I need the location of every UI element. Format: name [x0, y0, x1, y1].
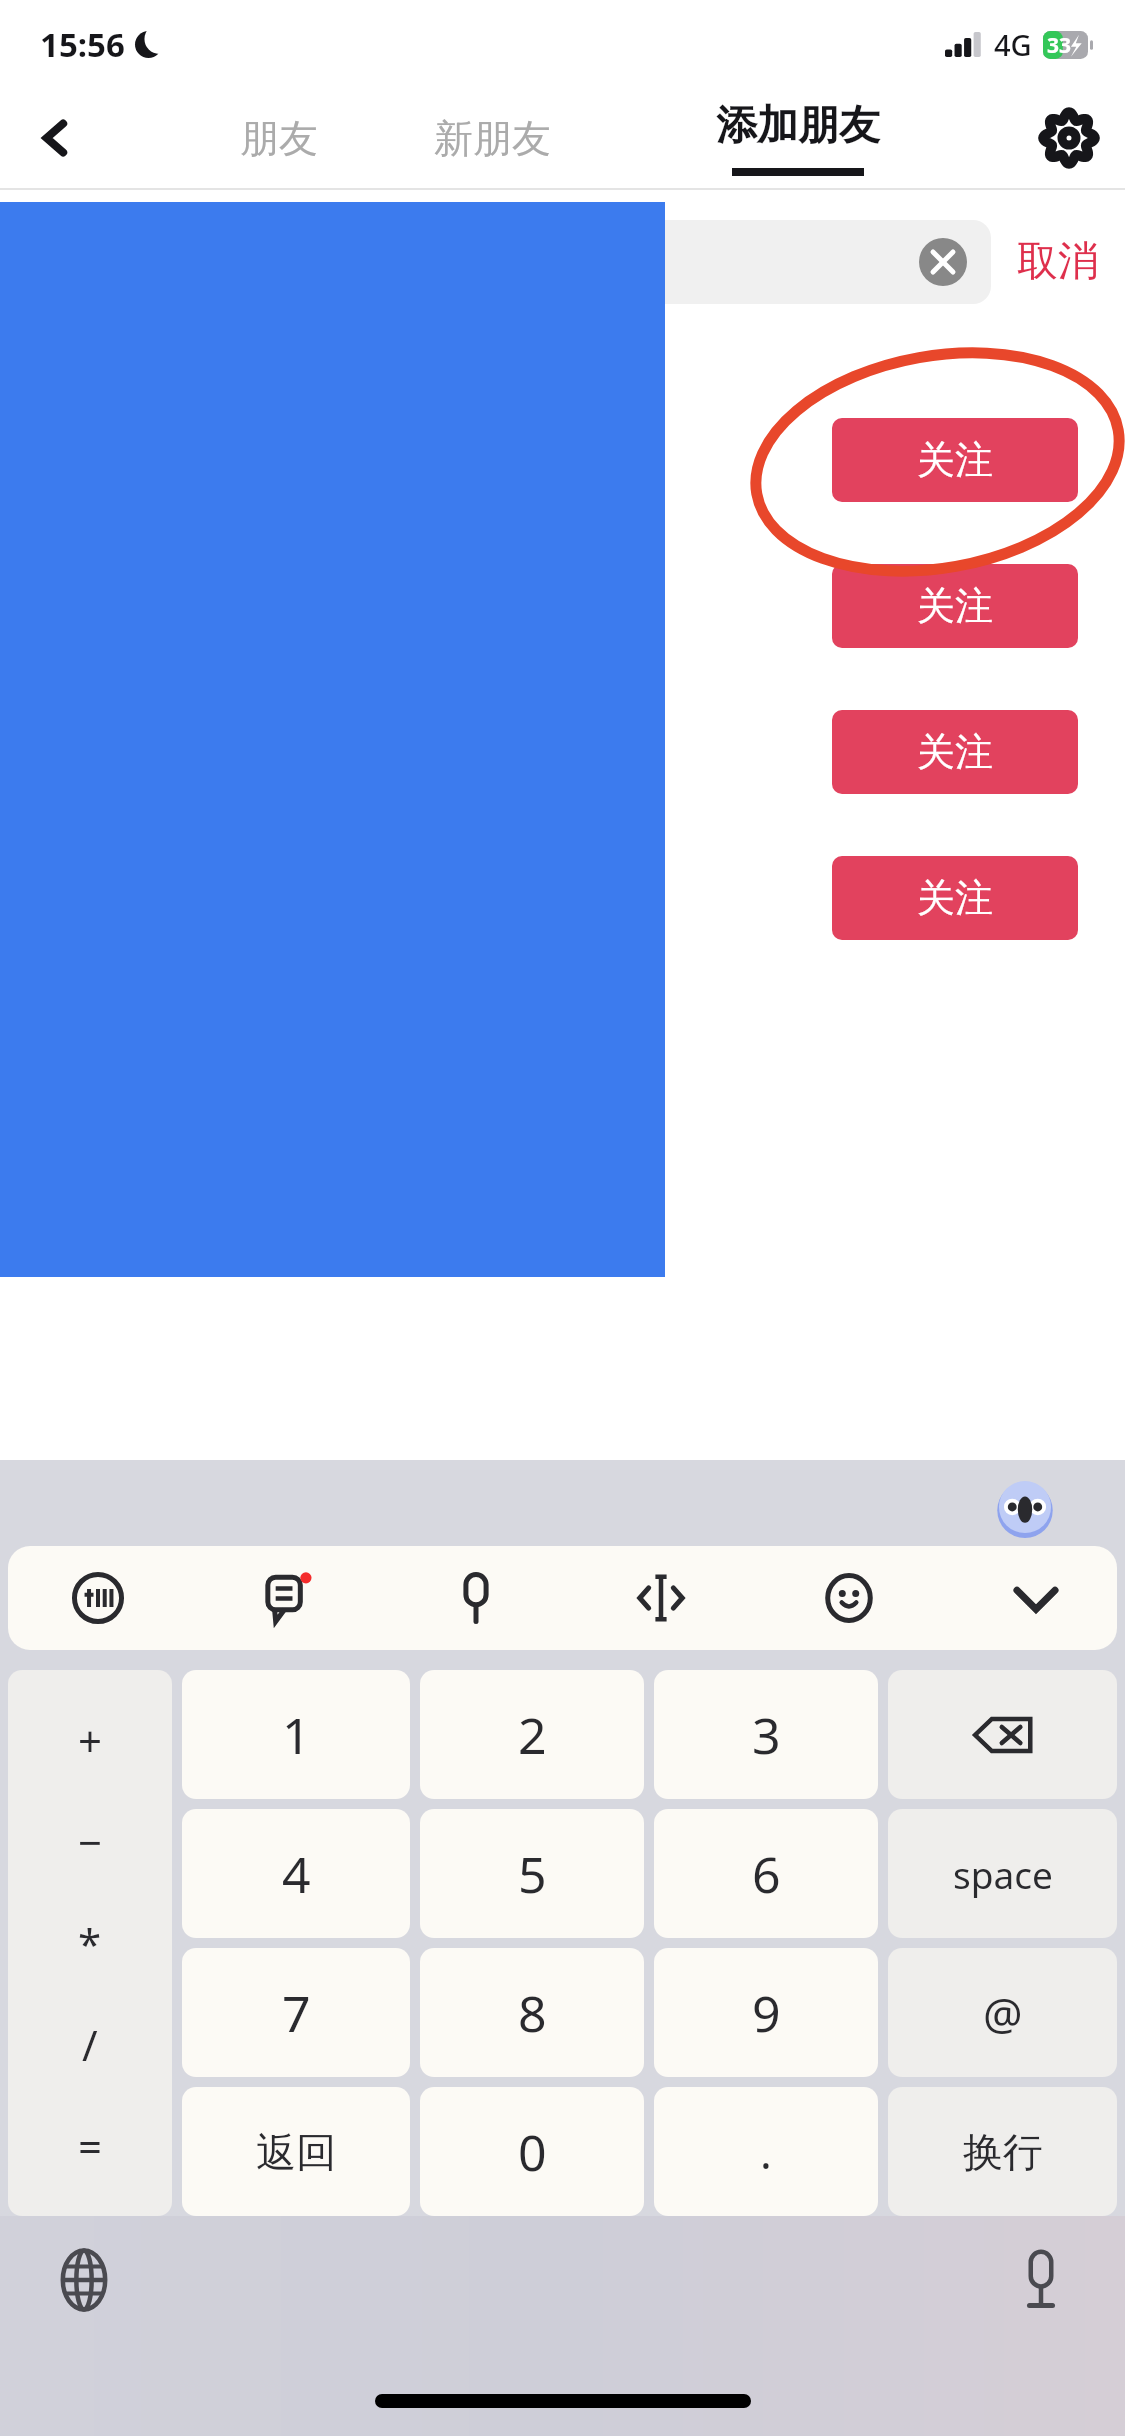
button[interactable]: 7: [182, 1948, 410, 2077]
button[interactable]: Clear text: [919, 238, 967, 286]
staticText: 2: [518, 1701, 547, 1769]
staticText: 4: [282, 1840, 311, 1908]
button[interactable]: 2: [420, 1670, 644, 1799]
staticText: 4G: [994, 25, 1032, 64]
staticText: 换行: [963, 2127, 1043, 2177]
staticText: 关注: [917, 874, 993, 922]
button[interactable]: Input method: [46, 1546, 150, 1650]
button[interactable]: 8: [420, 1948, 644, 2077]
button[interactable]: 朋友: [228, 98, 330, 179]
staticText: 添加朋友: [716, 100, 880, 152]
staticText: =: [78, 2117, 103, 2174]
staticText: *: [78, 1915, 102, 1972]
staticText: 1: [282, 1701, 311, 1769]
button[interactable]: +: [8, 1670, 172, 2216]
staticText: 朋友: [240, 114, 318, 163]
button[interactable]: Hide keyboard: [984, 1546, 1088, 1650]
button[interactable]: 关注: [832, 710, 1078, 794]
button[interactable]: Back: [0, 88, 112, 188]
button[interactable]: 6: [654, 1809, 878, 1938]
button[interactable]: 3: [654, 1670, 878, 1799]
staticText: 3: [752, 1701, 781, 1769]
button[interactable]: 0: [420, 2087, 644, 2216]
button[interactable]: 关注: [832, 418, 1078, 502]
button[interactable]: 换行: [888, 2087, 1117, 2216]
button[interactable]: 5: [420, 1809, 644, 1938]
staticText: 15:56: [40, 22, 125, 67]
button[interactable]: 返回: [182, 2087, 410, 2216]
staticText: .: [760, 2122, 772, 2182]
staticText: 33: [1047, 31, 1072, 59]
button[interactable]: 添加朋友: [716, 88, 880, 188]
staticText: 关注: [917, 728, 993, 776]
staticText: 9: [752, 1979, 781, 2047]
button[interactable]: Switch keyboard: [28, 2224, 140, 2336]
button[interactable]: 关注: [832, 856, 1078, 940]
staticText: 8: [518, 1979, 547, 2047]
button[interactable]: Messages: [236, 1546, 340, 1650]
staticText: @: [983, 1983, 1023, 2043]
button[interactable]: 关注: [832, 564, 1078, 648]
staticText: 0: [518, 2118, 547, 2186]
button[interactable]: @: [888, 1948, 1117, 2077]
button[interactable]: .: [654, 2087, 878, 2216]
staticText: 新朋友: [434, 114, 551, 163]
button[interactable]: 4: [182, 1809, 410, 1938]
staticText: 取消: [1017, 236, 1099, 288]
staticText: 返回: [256, 2127, 336, 2177]
button[interactable]: Settings: [1013, 88, 1125, 188]
staticText: space: [953, 1849, 1053, 1899]
staticText: 6: [752, 1840, 781, 1908]
staticText: +: [78, 1712, 103, 1769]
button[interactable]: 1: [182, 1670, 410, 1799]
staticText: 关注: [917, 582, 993, 630]
staticText: /: [82, 2016, 98, 2073]
button[interactable]: Voice input: [985, 2224, 1097, 2336]
staticText: 7: [282, 1979, 311, 2047]
button[interactable]: Cursor control: [609, 1546, 713, 1650]
button[interactable]: Emoji: [797, 1546, 901, 1650]
button[interactable]: Delete: [888, 1670, 1117, 1799]
button[interactable]: 取消: [991, 222, 1125, 302]
button[interactable]: Voice input: [424, 1546, 528, 1650]
button[interactable]: Clear text: [26, 220, 991, 304]
staticText: −: [78, 1813, 103, 1870]
staticText: 5: [518, 1840, 547, 1908]
button[interactable]: space: [888, 1809, 1117, 1938]
button[interactable]: 新朋友: [422, 98, 563, 179]
button[interactable]: 9: [654, 1948, 878, 2077]
staticText: 关注: [917, 436, 993, 484]
